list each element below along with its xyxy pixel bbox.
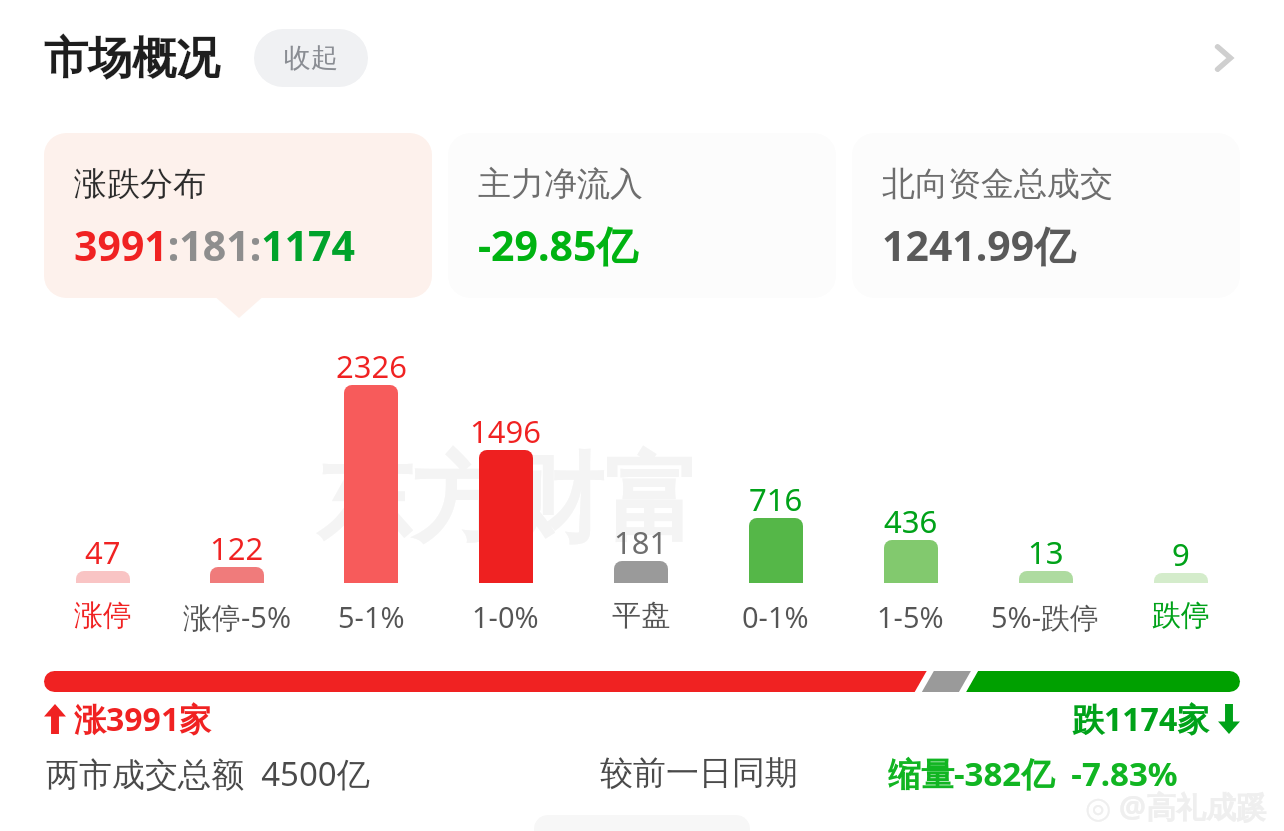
staticText: 5-1% xyxy=(338,597,405,636)
staticText: 北向资金总成交 xyxy=(882,163,1113,205)
staticText: 跌停 xyxy=(1152,597,1210,634)
staticText: 涨3991家 xyxy=(74,697,212,741)
staticText: 主力净流入 xyxy=(478,163,643,205)
staticText: 1241.99亿 xyxy=(882,217,1076,273)
staticText: 122 xyxy=(210,527,264,567)
staticText: 较前一日同期 xyxy=(600,752,798,794)
staticText: 缩量-382亿 -7.83% xyxy=(888,751,1178,796)
staticText: 716 xyxy=(749,478,803,518)
staticText: 47 xyxy=(85,531,121,571)
staticText: -29.85亿 xyxy=(478,217,638,273)
staticText: 1-5% xyxy=(877,597,944,636)
staticText: 9 xyxy=(1172,533,1190,573)
staticText: 市场概况 xyxy=(44,31,220,86)
staticText: ◎ @高礼成蹊 xyxy=(1085,786,1266,827)
staticText: 436 xyxy=(884,500,938,540)
staticText: 涨停 xyxy=(74,597,132,634)
staticText: 3991:181:1174 xyxy=(74,217,356,273)
staticText: 5%-跌停 xyxy=(991,597,1100,637)
staticText: 2326 xyxy=(336,345,407,385)
staticText: 两市成交总额 4500亿 xyxy=(46,751,370,796)
button[interactable]: 主力净流入 xyxy=(448,133,836,298)
button[interactable]: 涨跌分布 xyxy=(44,133,432,298)
staticText: 平盘 xyxy=(612,597,670,634)
staticText: 涨跌分布 xyxy=(74,163,206,205)
button[interactable]: 收起 xyxy=(254,29,368,87)
staticText: 1496 xyxy=(470,410,541,450)
staticText: 东方财富 xyxy=(316,440,700,561)
staticText: 收起 xyxy=(284,41,338,75)
staticText: 0-1% xyxy=(742,597,809,636)
button[interactable]: 北向资金总成交 xyxy=(852,133,1240,298)
staticText: 涨停-5% xyxy=(183,597,292,637)
staticText: 跌1174家 xyxy=(1072,697,1210,741)
staticText: 181 xyxy=(614,521,668,561)
staticText: 1-0% xyxy=(472,597,539,636)
button[interactable]: More xyxy=(1186,20,1262,96)
staticText: 13 xyxy=(1028,531,1064,571)
